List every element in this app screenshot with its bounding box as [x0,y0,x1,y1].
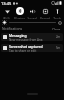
button[interactable]: Wi-Fi [1,7,12,19]
staticText: Clear [52,27,61,30]
button[interactable]: Screenshot captured [1,44,63,52]
button[interactable]: Bluetooth [14,7,25,19]
staticText: Tap to share or edit [9,49,37,52]
staticText: Torch [53,17,61,19]
staticText: New message from Ana [9,38,43,41]
staticText: Wi-Fi [3,17,10,19]
other: Sound [28,7,36,15]
button[interactable]: Torch [51,7,62,19]
staticText: 2m [56,35,61,39]
button[interactable]: Record [39,7,50,19]
staticText: Notifications [2,26,23,31]
button[interactable]: Sound [26,7,37,19]
staticText: Bluetooth [14,17,25,19]
other: Record [41,7,49,15]
staticText: 13:45 [1,1,12,6]
staticText: Sound [27,17,37,19]
other: Wi-Fi [3,7,11,15]
staticText: 5m [56,46,61,50]
button[interactable]: Messaging [1,33,63,41]
other: Bluetooth [16,7,24,15]
button[interactable]: Brightness [2,20,62,25]
staticText: Record [40,17,50,19]
staticText: Screenshot captured [9,44,43,49]
button[interactable]: Clear [51,26,62,31]
staticText: Messaging [9,33,27,38]
other: Torch [53,7,61,15]
